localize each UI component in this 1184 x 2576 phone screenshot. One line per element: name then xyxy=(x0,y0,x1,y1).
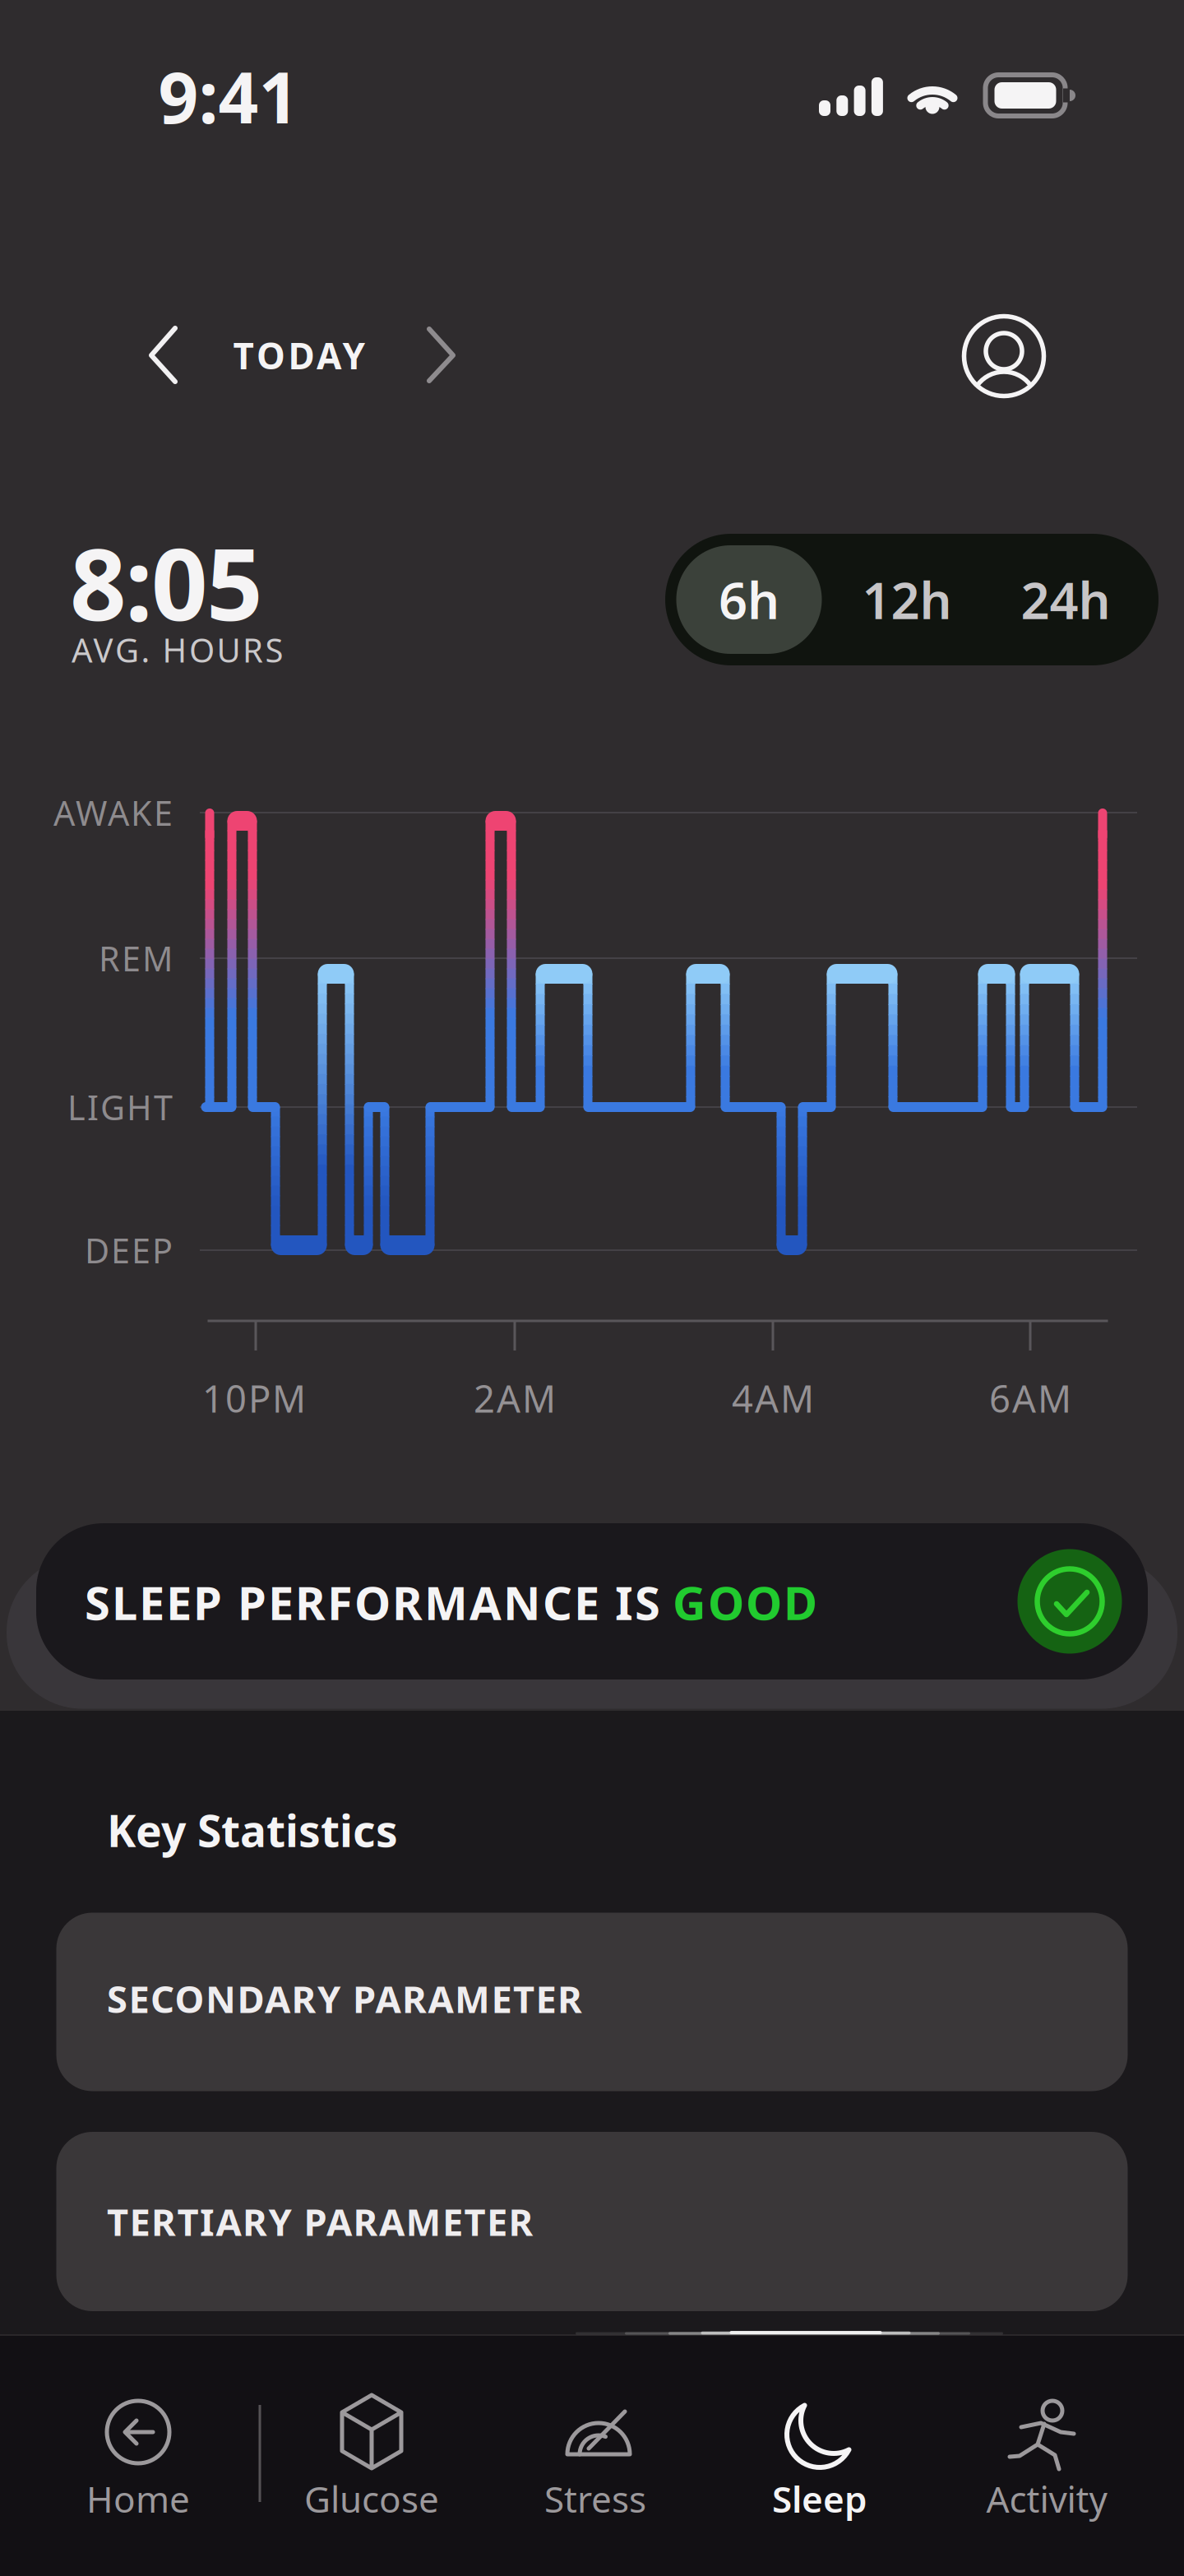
staticText: LIGHT xyxy=(67,1085,173,1130)
staticText: Sleep xyxy=(772,2475,867,2523)
staticText: Glucose xyxy=(304,2475,439,2523)
staticText: Key Statistics xyxy=(107,1801,398,1859)
button[interactable]: SECONDARY PARAMETER xyxy=(0,0,1184,2576)
staticText: Activity xyxy=(986,2475,1107,2523)
button[interactable]: Next day xyxy=(0,0,1184,2576)
staticText: DEEP xyxy=(85,1228,173,1273)
button[interactable]: Home xyxy=(0,0,1184,2576)
button[interactable]: 6h xyxy=(0,0,1184,2576)
staticText: SLEEP PERFORMANCE IS xyxy=(85,1572,660,1633)
staticText: 8:05 xyxy=(70,517,263,648)
staticText: 2AM xyxy=(474,1373,556,1423)
staticText: TERTIARY PARAMETER xyxy=(107,2197,533,2246)
button[interactable]: Previous day xyxy=(0,0,1184,2576)
button[interactable]: 24h xyxy=(0,0,1184,2576)
staticText: 4AM xyxy=(732,1373,814,1423)
staticText: 6h xyxy=(719,566,779,633)
staticText: AVG. HOURS xyxy=(72,628,283,672)
button[interactable]: TODAY xyxy=(233,331,365,379)
staticText: 12h xyxy=(862,566,952,633)
staticText: SECONDARY PARAMETER xyxy=(107,1974,582,2023)
button[interactable]: Glucose xyxy=(0,0,1184,2576)
staticText: REM xyxy=(99,936,173,981)
button[interactable]: SLEEP PERFORMANCE IS xyxy=(0,0,1184,2576)
staticText: 9:41 xyxy=(158,50,299,143)
staticText: GOOD xyxy=(673,1572,817,1633)
staticText: 6AM xyxy=(989,1373,1071,1423)
button[interactable]: TERTIARY PARAMETER xyxy=(0,0,1184,2576)
staticText: TODAY xyxy=(233,331,365,379)
staticText: 24h xyxy=(1021,566,1110,633)
button[interactable]: Sleep xyxy=(0,0,1184,2576)
button[interactable]: Profile xyxy=(0,0,1184,2576)
button[interactable]: Stress xyxy=(0,0,1184,2576)
button[interactable]: 12h xyxy=(0,0,1184,2576)
button[interactable]: Activity xyxy=(0,0,1184,2576)
staticText: Home xyxy=(86,2475,190,2523)
staticText: Stress xyxy=(544,2475,646,2523)
staticText: 10PM xyxy=(202,1373,306,1423)
staticText: AWAKE xyxy=(53,790,173,835)
